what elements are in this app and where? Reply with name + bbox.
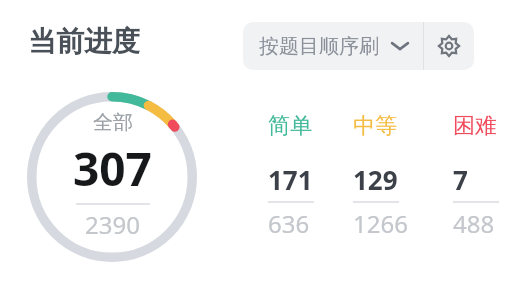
staticText: 简单: [268, 112, 312, 140]
button[interactable]: 当前进度: [26, 22, 142, 61]
staticText: 129: [353, 162, 398, 197]
button[interactable]: 简单: [268, 112, 334, 240]
staticText: 488: [453, 207, 495, 240]
staticText: 中等: [353, 112, 397, 140]
staticText: 全部: [93, 110, 133, 135]
staticText: 按题目顺序刷: [259, 34, 379, 59]
staticText: 307: [73, 137, 152, 200]
button[interactable]: 按题目顺序刷: [243, 22, 423, 70]
staticText: 当前进度: [28, 24, 140, 59]
staticText: 7: [453, 162, 468, 197]
button[interactable]: 中等: [353, 112, 419, 240]
button[interactable]: Settings: [424, 22, 474, 70]
button[interactable]: 困难: [453, 112, 519, 240]
staticText: 困难: [453, 112, 497, 140]
staticText: 1266: [353, 207, 408, 240]
staticText: 636: [268, 207, 310, 240]
button[interactable]: 全部: [27, 92, 197, 262]
staticText: 2390: [85, 208, 140, 241]
staticText: 171: [268, 162, 313, 197]
